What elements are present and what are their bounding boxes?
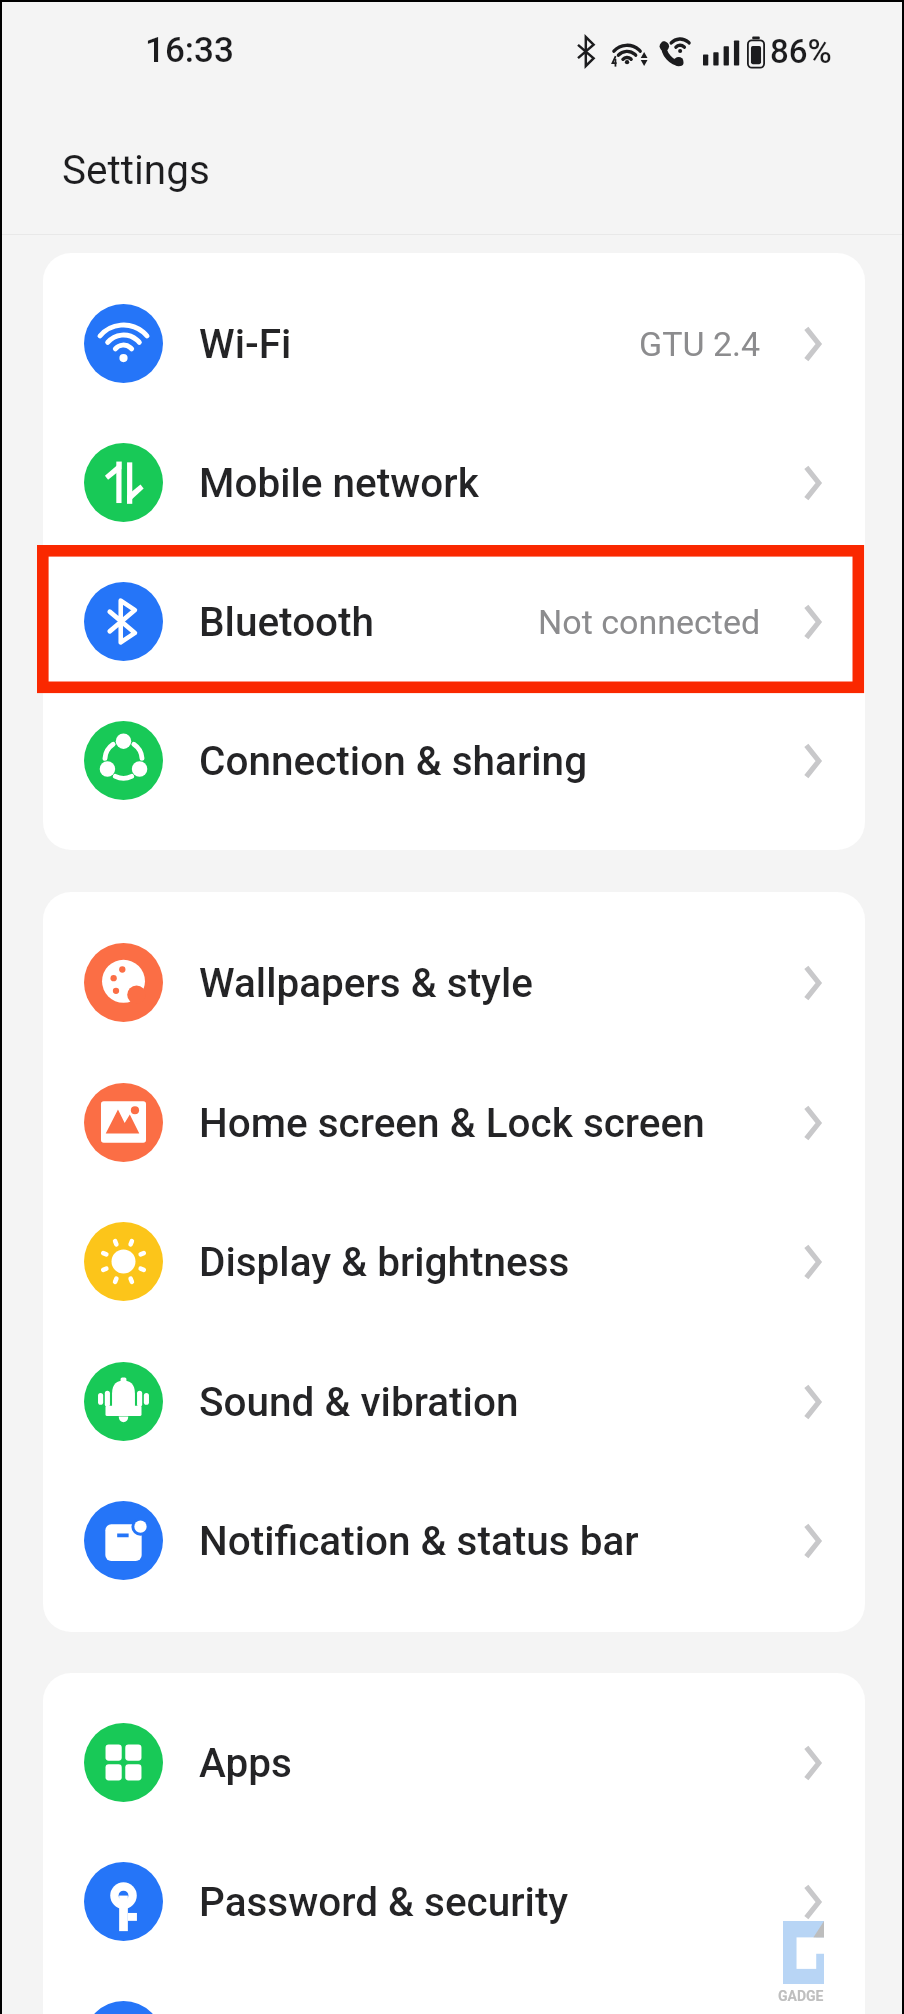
button[interactable]: Sound & vibration <box>43 1332 865 1471</box>
staticText: 16:33 <box>145 30 234 71</box>
other: Battery <box>747 36 765 68</box>
staticText: Not connected <box>538 602 761 642</box>
button[interactable]: Wi-Fi <box>43 274 865 413</box>
other: Calling over Wi-Fi <box>661 38 690 65</box>
button[interactable]: Password & security <box>43 1832 865 1971</box>
staticText: Wi-Fi <box>199 320 292 367</box>
staticText: Bluetooth <box>199 598 375 645</box>
staticText: Password & security <box>199 1878 569 1925</box>
staticText: Wallpapers & style <box>199 959 533 1006</box>
staticText: Settings <box>62 146 210 193</box>
staticText: GADGE <box>778 1988 824 2004</box>
button[interactable]: Bluetooth <box>43 552 865 691</box>
button[interactable]: Wallpapers & style <box>43 913 865 1052</box>
other: Wi-Fi <box>609 38 647 65</box>
button[interactable]: Apps <box>43 1693 865 1832</box>
other: Mobile signal <box>703 37 737 66</box>
staticText: Sound & vibration <box>199 1378 519 1425</box>
staticText: Home screen & Lock screen <box>199 1099 705 1146</box>
staticText: Display & brightness <box>199 1238 570 1285</box>
staticText: Connection & sharing <box>199 737 588 784</box>
button[interactable]: Home screen & Lock screen <box>43 1053 865 1192</box>
button[interactable]: Notification & status bar <box>43 1471 865 1610</box>
staticText: Apps <box>199 1739 292 1786</box>
button[interactable]: Connection & sharing <box>43 691 865 830</box>
button[interactable]: Display & brightness <box>43 1192 865 1331</box>
other: Bluetooth <box>576 37 596 66</box>
staticText: 86% <box>770 32 832 71</box>
button[interactable]: Mobile network <box>43 413 865 552</box>
staticText: GTU 2.4 <box>639 324 761 364</box>
staticText: Notification & status bar <box>199 1517 639 1564</box>
staticText: Mobile network <box>199 459 479 506</box>
button[interactable]: Privacy <box>43 1971 865 2014</box>
